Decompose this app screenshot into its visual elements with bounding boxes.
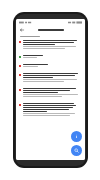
button[interactable]	[16, 86, 85, 101]
button[interactable]	[16, 71, 85, 86]
button[interactable]: Back	[18, 26, 25, 33]
button[interactable]	[16, 62, 85, 71]
button[interactable]	[16, 38, 85, 53]
button[interactable]	[16, 53, 85, 62]
button[interactable]: Search	[71, 145, 82, 156]
button[interactable]	[16, 101, 85, 119]
button[interactable]: Info	[71, 131, 82, 142]
